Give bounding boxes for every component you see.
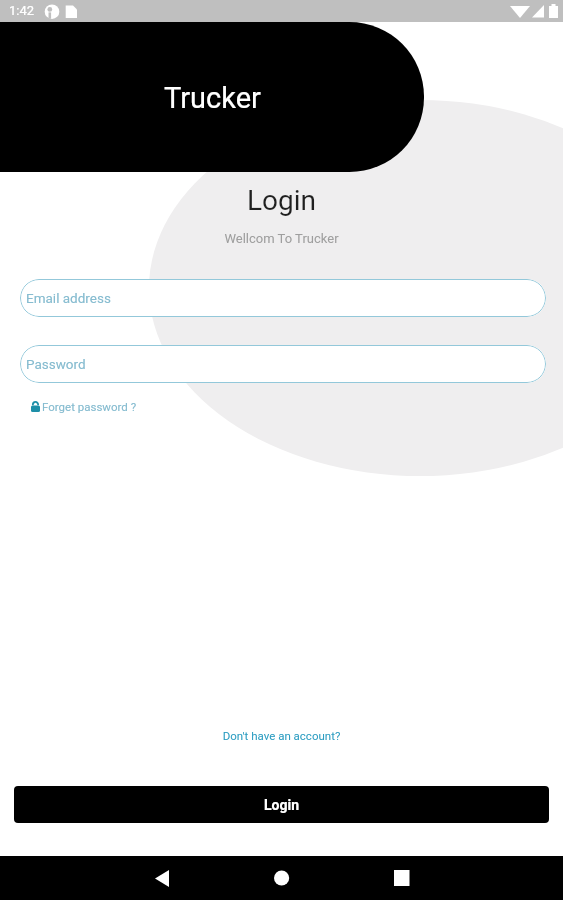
button[interactable]: Don't have an account?: [0, 726, 563, 745]
staticText: Password: [26, 356, 86, 372]
button[interactable]: Home: [263, 856, 303, 900]
staticText: Login: [264, 797, 300, 813]
button[interactable]: Recent apps: [383, 856, 423, 900]
button[interactable]: Back: [142, 856, 182, 900]
staticText: Email address: [26, 290, 111, 306]
button[interactable]: Forget password ?: [31, 400, 137, 413]
button[interactable]: Password: [20, 345, 546, 383]
button[interactable]: Email address: [20, 279, 546, 317]
staticText: 1:42: [9, 3, 35, 18]
staticText: Forget password ?: [42, 400, 137, 413]
staticText: Wellcom To Trucker: [0, 231, 563, 246]
button[interactable]: Login: [14, 786, 549, 823]
staticText: Trucker: [164, 81, 261, 115]
staticText: Login: [0, 184, 563, 217]
